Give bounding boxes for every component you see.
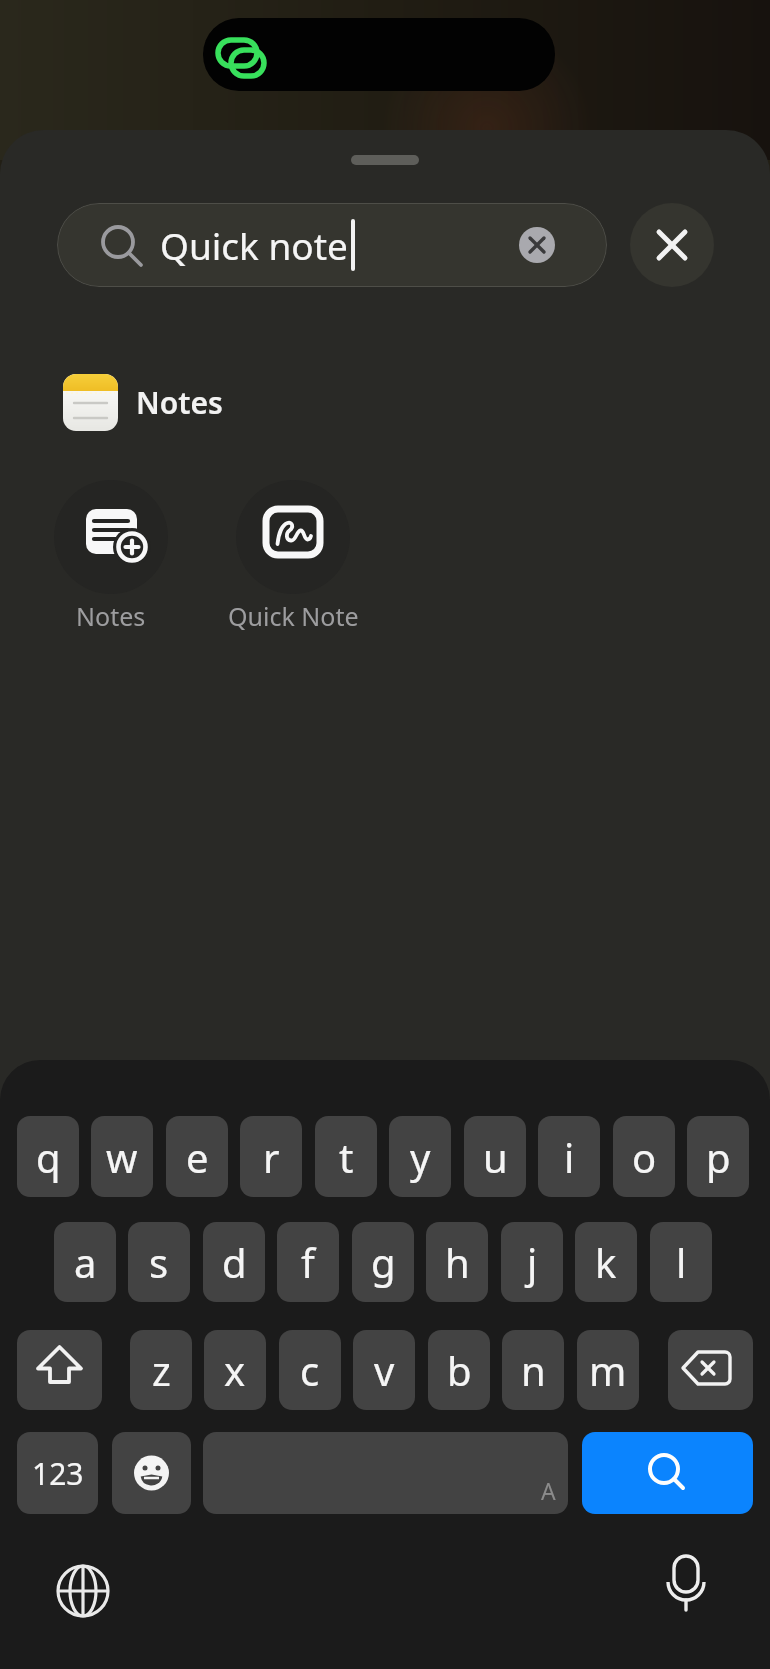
button[interactable]: z — [130, 1330, 192, 1410]
button[interactable]: r — [240, 1116, 302, 1197]
staticText: Notes — [76, 599, 146, 631]
staticText: g — [371, 1235, 396, 1289]
staticText: y — [410, 1130, 431, 1184]
staticText: m — [589, 1343, 627, 1397]
button[interactable]: i — [538, 1116, 600, 1197]
staticText: h — [445, 1235, 470, 1289]
button[interactable] — [653, 1550, 719, 1620]
button[interactable]: k — [575, 1222, 637, 1302]
staticText: f — [301, 1235, 315, 1289]
button[interactable] — [50, 1558, 116, 1624]
button[interactable]: A — [203, 1432, 568, 1514]
staticText: p — [706, 1130, 731, 1184]
button[interactable] — [63, 374, 118, 431]
staticText: j — [527, 1235, 538, 1289]
button[interactable]: v — [353, 1330, 415, 1410]
button[interactable]: w — [91, 1116, 153, 1197]
staticText: c — [300, 1343, 320, 1397]
button[interactable] — [630, 203, 714, 287]
staticText: Quick note — [160, 220, 348, 270]
staticText: b — [447, 1343, 472, 1397]
staticText: v — [374, 1343, 395, 1397]
button[interactable]: e — [166, 1116, 228, 1197]
button[interactable]: g — [352, 1222, 414, 1302]
button[interactable]: u — [464, 1116, 526, 1197]
button[interactable]: o — [613, 1116, 675, 1197]
button[interactable]: h — [426, 1222, 488, 1302]
staticText: w — [106, 1130, 138, 1184]
button[interactable] — [236, 480, 350, 594]
staticText: A — [541, 1475, 556, 1506]
button[interactable]: l — [650, 1222, 712, 1302]
staticText: l — [676, 1235, 687, 1289]
staticText: o — [632, 1130, 657, 1184]
staticText: i — [564, 1130, 575, 1184]
staticText: Quick Note — [228, 599, 359, 631]
button[interactable] — [54, 480, 168, 594]
button[interactable]: 123 — [17, 1432, 98, 1514]
button[interactable]: b — [428, 1330, 490, 1410]
button[interactable]: f — [277, 1222, 339, 1302]
staticText: u — [483, 1130, 508, 1184]
button[interactable]: Notes — [136, 374, 396, 431]
button[interactable]: n — [502, 1330, 564, 1410]
staticText: 123 — [32, 1453, 84, 1494]
button[interactable]: x — [204, 1330, 266, 1410]
button[interactable]: m — [577, 1330, 639, 1410]
button[interactable]: t — [315, 1116, 377, 1197]
button[interactable]: p — [687, 1116, 749, 1197]
staticText: z — [152, 1343, 171, 1397]
staticText: Notes — [136, 382, 223, 423]
button[interactable]: q — [17, 1116, 79, 1197]
button[interactable] — [17, 1330, 102, 1410]
staticText: d — [222, 1235, 247, 1289]
button[interactable]: Quick note — [57, 203, 607, 287]
button[interactable]: d — [203, 1222, 265, 1302]
staticText: r — [263, 1130, 280, 1184]
button[interactable]: s — [128, 1222, 190, 1302]
button[interactable]: a — [54, 1222, 116, 1302]
staticText: e — [186, 1130, 209, 1184]
staticText: n — [521, 1343, 546, 1397]
staticText: a — [74, 1235, 97, 1289]
staticText: k — [595, 1235, 617, 1289]
staticText: x — [224, 1343, 246, 1397]
button[interactable]: j — [501, 1222, 563, 1302]
button[interactable] — [668, 1330, 753, 1410]
button[interactable] — [112, 1432, 191, 1514]
button[interactable]: c — [279, 1330, 341, 1410]
button[interactable]: y — [389, 1116, 451, 1197]
staticText: t — [339, 1130, 354, 1184]
button[interactable] — [582, 1432, 753, 1514]
staticText: s — [149, 1235, 169, 1289]
staticText: q — [36, 1130, 61, 1184]
